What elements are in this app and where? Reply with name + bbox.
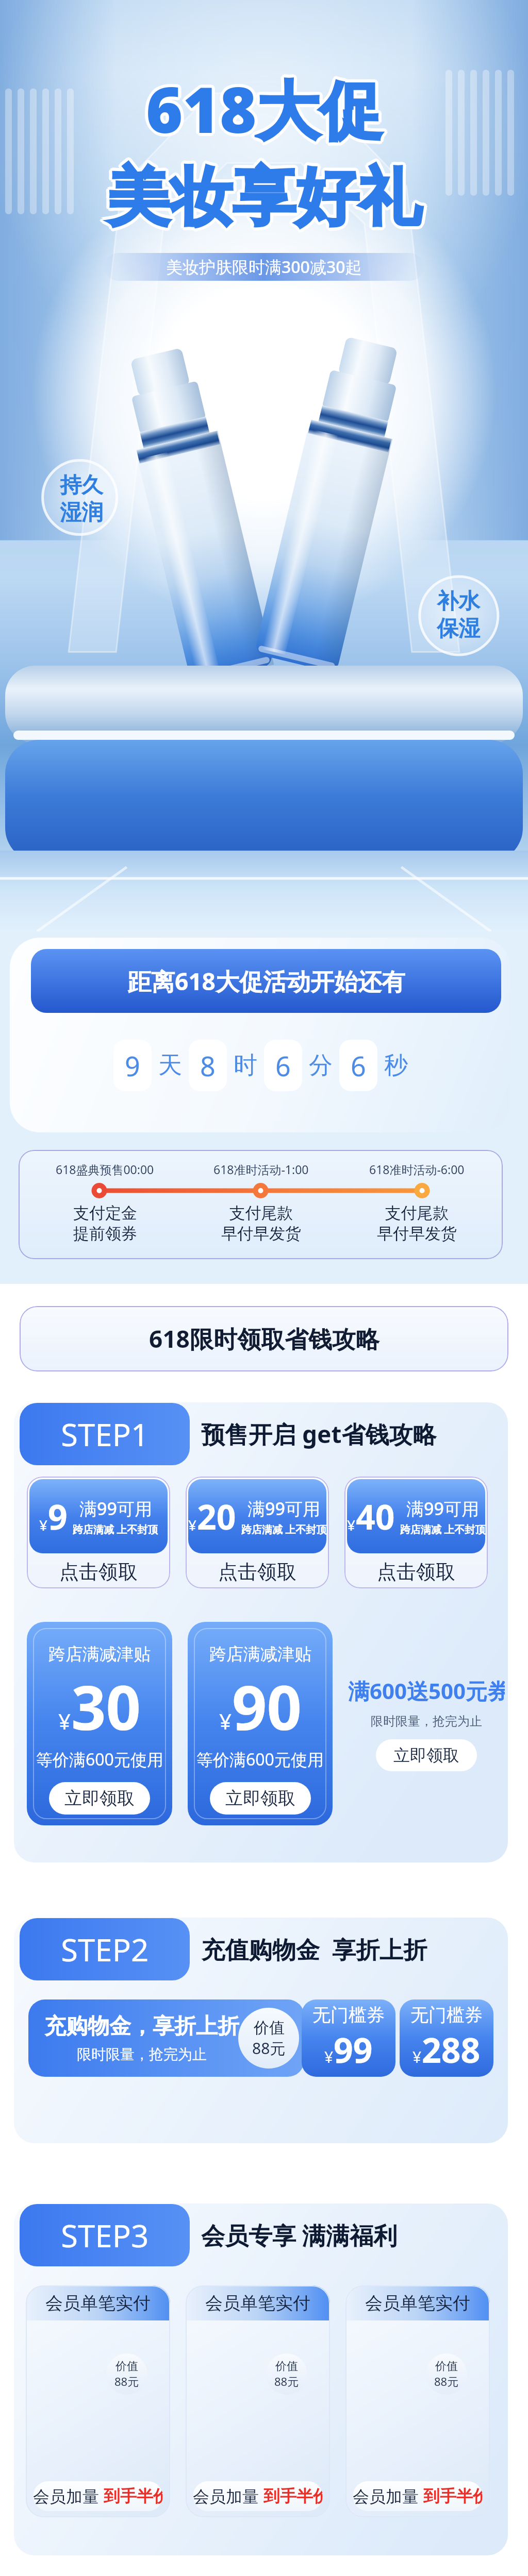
staticText: 支付尾款 早付早发货 — [377, 1203, 457, 1244]
staticText: 美妆享好礼 — [107, 161, 421, 241]
button[interactable]: ¥ — [27, 1477, 170, 1588]
staticText: 持久 — [60, 472, 103, 499]
staticText: 618大促 — [143, 65, 380, 151]
staticText: 9 — [48, 1493, 68, 1539]
staticText: ¥ — [412, 2046, 422, 2067]
staticText: 8 — [200, 1047, 216, 1084]
staticText: ¥ — [58, 1706, 71, 1736]
staticText: 立即领取 — [225, 1787, 295, 1809]
staticText: 9 — [125, 1047, 140, 1084]
staticText: 美妆享好礼 — [108, 161, 423, 240]
staticText: 价值 — [254, 2018, 285, 2038]
staticText: 618大促 — [148, 64, 385, 150]
staticText: ¥ — [324, 2046, 334, 2067]
staticText: 立即领取 — [64, 1787, 135, 1809]
staticText: 充购物金，享折上折 — [44, 2013, 239, 2040]
staticText: 跨店满减津贴 — [209, 1643, 311, 1665]
staticText: 618大促 — [145, 69, 382, 155]
staticText: 美妆护肤限时满300减30起 — [166, 256, 362, 278]
button[interactable]: ¥ — [186, 1477, 329, 1588]
staticText: 保湿 — [437, 615, 480, 642]
staticText: 30 — [71, 1665, 141, 1748]
staticText: 无门槛券 — [410, 2004, 483, 2026]
button[interactable]: 跨店满减津贴 — [188, 1622, 333, 1825]
staticText: STEP1 — [61, 1413, 149, 1455]
staticText: 点击领取 — [218, 1560, 296, 1584]
button[interactable]: 跨店满减津贴 — [27, 1622, 172, 1825]
staticText: 等价满600元使用 — [36, 1748, 163, 1771]
staticText: 湿润 — [60, 499, 103, 527]
staticText: 秒 — [384, 1050, 408, 1080]
staticText: 90 — [232, 1665, 302, 1748]
staticText: 满99可用 — [406, 1497, 479, 1520]
staticText: 618限时领取省钱攻略 — [149, 1323, 379, 1355]
staticText: 跨店满减 上不封顶 — [400, 1522, 485, 1536]
staticText: 跨店满减 上不封顶 — [241, 1522, 326, 1536]
staticText: 美妆享好礼 — [104, 157, 419, 236]
staticText: 限时限量，抢完为止 — [77, 2045, 207, 2063]
staticText: 美妆享好礼 — [106, 161, 420, 240]
button[interactable]: ¥ — [344, 1477, 488, 1588]
staticText: 618大促 — [147, 69, 384, 155]
button[interactable]: 充购物金，享折上折 — [28, 1999, 304, 2077]
staticText: 美妆享好礼 — [104, 158, 418, 238]
staticText: 满600送500元券 — [348, 1676, 505, 1705]
staticText: 618大促 — [147, 63, 384, 149]
staticText: 分 — [309, 1050, 333, 1080]
staticText: 到手半价 — [423, 2486, 483, 2506]
button[interactable]: 会员单笔实付 — [345, 2285, 490, 2517]
button[interactable]: 会员单笔实付 — [186, 2285, 330, 2517]
staticText: 满99可用 — [247, 1497, 320, 1520]
staticText: 美妆享好礼 — [107, 158, 421, 238]
staticText: STEP2 — [61, 1928, 149, 1971]
staticText: 88元 — [434, 2374, 459, 2389]
staticText: 支付定金 提前领券 — [73, 1203, 137, 1244]
staticText: 美妆享好礼 — [104, 159, 419, 239]
staticText: STEP3 — [61, 2214, 149, 2257]
staticText: 点击领取 — [377, 1560, 455, 1584]
staticText: 会员加量 — [33, 2485, 104, 2507]
staticText: 618大促 — [143, 66, 379, 152]
staticText: ¥ — [188, 1515, 197, 1535]
staticText: 会员专享 满满福利 — [201, 2219, 397, 2251]
staticText: 6 — [275, 1047, 291, 1084]
staticText: ¥ — [219, 1706, 232, 1736]
staticText: 会员加量 — [353, 2485, 423, 2507]
staticText: 价值 — [435, 2359, 458, 2374]
staticText: 时 — [234, 1050, 257, 1080]
staticText: 跨店满减 上不封顶 — [73, 1522, 158, 1536]
staticText: ¥ — [347, 1515, 356, 1535]
staticText: 预售开启 get省钱攻略 — [201, 1418, 437, 1450]
staticText: 88元 — [252, 2038, 286, 2059]
staticText: ¥ — [39, 1515, 48, 1535]
staticText: 20 — [197, 1493, 236, 1539]
staticText: 99 — [334, 2026, 373, 2073]
staticText: 会员单笔实付 — [45, 2292, 151, 2314]
staticText: 美妆享好礼 — [110, 158, 424, 238]
staticText: 价值 — [115, 2359, 138, 2374]
staticText: 618盛典预售00:00 — [56, 1161, 154, 1177]
staticText: 距离618大促活动开始还有 — [127, 965, 405, 997]
staticText: 288 — [422, 2026, 481, 2073]
button[interactable]: 无门槛券 — [400, 1999, 493, 2077]
staticText: 88元 — [274, 2374, 299, 2389]
staticText: 618准时活动-6:00 — [369, 1161, 465, 1177]
staticText: 无门槛券 — [312, 2004, 385, 2026]
button[interactable]: 立即领取 — [376, 1739, 477, 1771]
staticText: 会员加量 — [193, 2485, 263, 2507]
staticText: 618大促 — [146, 63, 383, 149]
staticText: 618大促 — [146, 69, 383, 155]
staticText: 天 — [158, 1050, 182, 1080]
button[interactable]: 会员单笔实付 — [26, 2285, 170, 2517]
staticText: 618准时活动-1:00 — [213, 1161, 309, 1177]
staticText: 立即领取 — [393, 1745, 459, 1766]
staticText: 点击领取 — [59, 1560, 138, 1584]
staticText: 限时限量，抢完为止 — [371, 1714, 482, 1729]
button[interactable]: 无门槛券 — [302, 1999, 395, 2077]
staticText: 价值 — [275, 2359, 298, 2374]
staticText: 美妆享好礼 — [107, 155, 421, 234]
staticText: 618大促 — [144, 63, 381, 149]
staticText: 美妆享好礼 — [105, 156, 420, 235]
staticText: 88元 — [114, 2374, 139, 2389]
button[interactable]: 距离618大促活动开始还有 — [31, 949, 501, 1013]
